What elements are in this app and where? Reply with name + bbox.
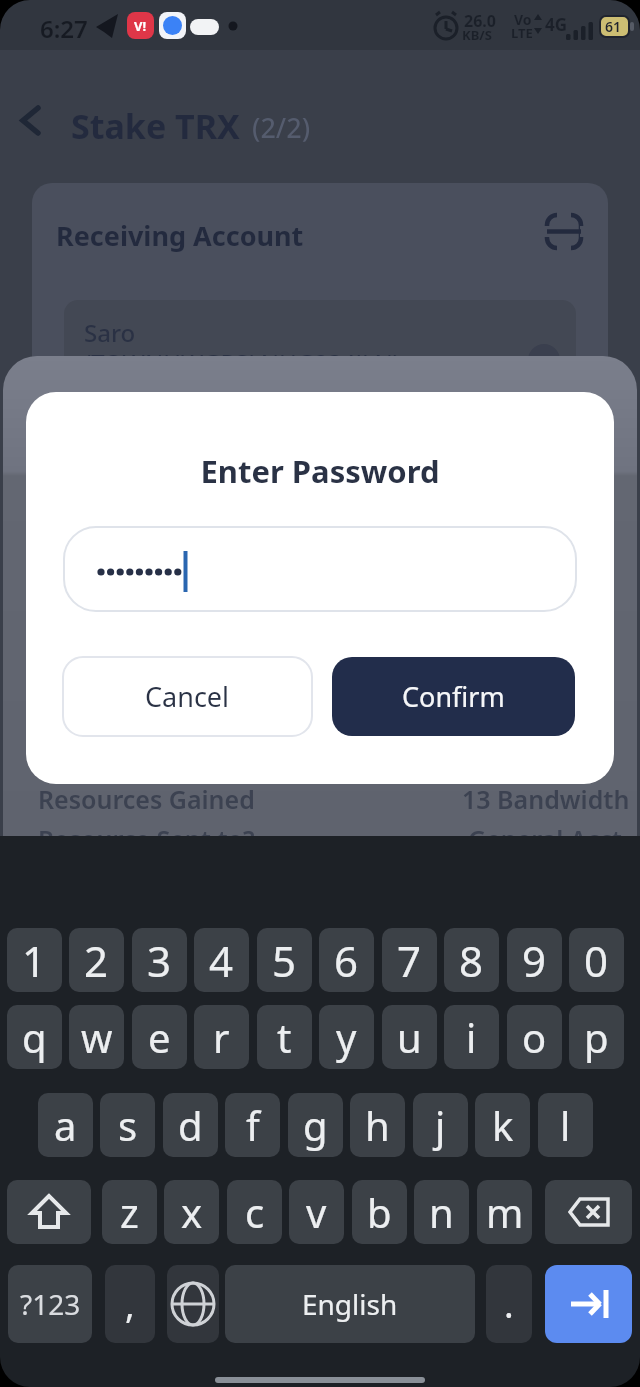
button[interactable]: 5	[257, 928, 312, 992]
staticText: k	[492, 1098, 514, 1152]
button[interactable]: 2	[69, 928, 124, 992]
button[interactable]: v	[289, 1180, 344, 1244]
button[interactable]: e	[132, 1005, 187, 1069]
staticText: .	[504, 1280, 514, 1329]
button[interactable]: 6	[319, 928, 374, 992]
button[interactable]: 3	[132, 928, 187, 992]
button[interactable]: a	[38, 1093, 93, 1157]
button[interactable]	[545, 1180, 632, 1244]
button[interactable]: n	[414, 1180, 469, 1244]
button[interactable]: h	[350, 1093, 405, 1157]
staticText: l	[560, 1098, 571, 1152]
staticText: 13 Bandwidth	[462, 782, 630, 816]
button[interactable]: d	[163, 1093, 218, 1157]
button[interactable]: m	[477, 1180, 532, 1244]
button[interactable]: 0	[569, 928, 624, 992]
button[interactable]: y	[319, 1005, 374, 1069]
staticText: u	[397, 1010, 422, 1064]
staticText: 61	[605, 17, 622, 36]
staticText: LTE	[511, 24, 533, 42]
staticText: m	[486, 1185, 524, 1239]
staticText: p	[584, 1010, 609, 1064]
staticText: 1	[22, 932, 47, 989]
staticText: x	[181, 1185, 203, 1239]
button[interactable]: b	[352, 1180, 407, 1244]
button[interactable]: q	[7, 1005, 62, 1069]
staticText: Resources Gained	[38, 782, 255, 816]
staticText: f	[246, 1098, 260, 1152]
staticText: q	[22, 1010, 47, 1064]
staticText: 26.0	[464, 10, 496, 32]
staticText: V!	[134, 17, 147, 35]
button[interactable]	[10, 98, 54, 142]
button[interactable]: ?123	[8, 1265, 92, 1343]
staticText: a	[54, 1098, 77, 1152]
staticText: e	[148, 1010, 171, 1064]
button[interactable]: f	[225, 1093, 280, 1157]
button[interactable]: English	[225, 1265, 475, 1343]
button[interactable]: 8	[444, 928, 499, 992]
button[interactable]: 4	[194, 928, 249, 992]
staticText: (2/2)	[252, 109, 311, 146]
staticText: w	[81, 1010, 113, 1064]
button[interactable]: l	[538, 1093, 593, 1157]
button[interactable]	[7, 1180, 91, 1244]
staticText: 4G	[545, 13, 568, 36]
button[interactable]: Confirm	[332, 657, 575, 736]
staticText: Receiving Account	[56, 217, 304, 254]
staticText: o	[522, 1010, 547, 1064]
button[interactable]: p	[569, 1005, 624, 1069]
staticText: ?123	[20, 1285, 81, 1323]
button[interactable]: s	[100, 1093, 155, 1157]
button[interactable]: g	[288, 1093, 343, 1157]
button[interactable]: ,	[105, 1265, 155, 1343]
staticText: 6:27	[40, 12, 88, 45]
staticText: ,	[125, 1280, 135, 1329]
staticText: 2	[84, 932, 109, 989]
staticText: g	[303, 1098, 328, 1152]
staticText: b	[367, 1185, 392, 1239]
staticText: j	[435, 1098, 446, 1152]
staticText: z	[120, 1185, 139, 1239]
staticText: 8	[459, 932, 484, 989]
staticText: y	[336, 1010, 357, 1064]
button[interactable]	[545, 1265, 632, 1343]
button[interactable]: r	[194, 1005, 249, 1069]
button[interactable]: .	[486, 1265, 532, 1343]
staticText: 5	[272, 932, 297, 989]
button[interactable]: 1	[7, 928, 62, 992]
button[interactable]: x	[164, 1180, 219, 1244]
staticText: s	[118, 1098, 138, 1152]
button[interactable]: i	[444, 1005, 499, 1069]
button[interactable]: w	[69, 1005, 124, 1069]
button[interactable]: 7	[382, 928, 437, 992]
staticText: r	[213, 1010, 230, 1064]
button[interactable]	[64, 527, 576, 611]
staticText: n	[429, 1185, 454, 1239]
staticText: Cancel	[145, 678, 230, 715]
button[interactable]: j	[413, 1093, 468, 1157]
staticText: Saro	[84, 316, 136, 349]
staticText: c	[245, 1185, 265, 1239]
staticText: 6	[334, 932, 359, 989]
staticText: General Acct	[468, 822, 622, 856]
staticText: Vo	[514, 10, 532, 29]
button[interactable]: z	[102, 1180, 157, 1244]
staticText: Confirm	[402, 678, 505, 715]
staticText: KB/S	[462, 26, 492, 44]
button[interactable]: 9	[507, 928, 562, 992]
staticText: h	[365, 1098, 390, 1152]
button[interactable]: t	[257, 1005, 312, 1069]
staticText: Resource Sent to?	[38, 822, 255, 856]
staticText: Stake TRX	[71, 103, 240, 149]
button[interactable]: c	[227, 1180, 282, 1244]
staticText: English	[302, 1285, 398, 1323]
button[interactable]	[167, 1265, 219, 1343]
staticText: 9	[522, 932, 547, 989]
button[interactable]: u	[382, 1005, 437, 1069]
staticText: v	[306, 1185, 327, 1239]
button[interactable]: Cancel	[63, 657, 312, 736]
button[interactable]: k	[475, 1093, 530, 1157]
staticText: t	[277, 1010, 292, 1064]
button[interactable]: o	[507, 1005, 562, 1069]
